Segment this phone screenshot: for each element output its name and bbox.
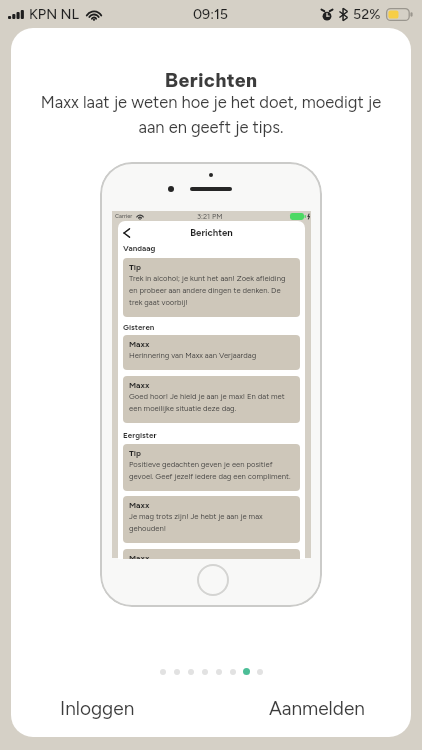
button[interactable]: Tip: [123, 258, 300, 317]
staticText: Carrier: [115, 213, 133, 220]
staticText: Aanmelden: [269, 697, 365, 720]
staticText: 09:15: [193, 6, 229, 23]
staticText: Maxx laat je weten hoe je het doet, moed…: [31, 92, 391, 137]
staticText: Herinnering van Maxx aan Verjaardag: [129, 351, 257, 360]
staticText: Inloggen: [60, 697, 135, 720]
staticText: Maxx: [129, 500, 150, 510]
button[interactable]: Maxx: [123, 376, 300, 423]
button[interactable]: Maxx: [123, 496, 300, 543]
staticText: Eergister: [123, 430, 157, 440]
staticText: Positieve gedachten geven je een positie…: [129, 460, 295, 481]
staticText: Je mag trots zijn! Je hebt je aan je max…: [129, 512, 295, 533]
staticText: KPN NL: [29, 6, 80, 23]
staticText: Maxx: [129, 553, 150, 559]
staticText: Goed hoor! Je hield je aan je max! En da…: [129, 392, 295, 413]
staticText: 52%: [353, 6, 381, 23]
button[interactable]: Maxx: [123, 335, 300, 370]
staticText: Trek in alcohol; je kunt het aan! Zoek a…: [129, 274, 295, 307]
button[interactable]: Tip: [123, 444, 300, 491]
staticText: Maxx: [129, 380, 150, 390]
staticText: Maxx: [129, 339, 150, 349]
staticText: Tip: [129, 448, 142, 458]
staticText: Tip: [129, 262, 142, 272]
staticText: Vandaag: [123, 243, 156, 253]
staticText: 3:21 PM: [197, 212, 223, 221]
button[interactable]: Inloggen: [48, 691, 147, 726]
button[interactable]: Aanmelden: [257, 691, 377, 726]
staticText: Gisteren: [123, 322, 155, 332]
staticText: Berichten: [11, 69, 411, 92]
staticText: Berichten: [118, 227, 305, 239]
button[interactable]: Back: [123, 228, 130, 238]
button[interactable]: Maxx: [123, 549, 300, 559]
